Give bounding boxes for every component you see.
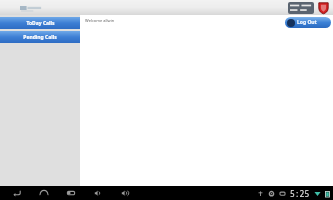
button[interactable]: Log Out — [285, 17, 331, 28]
staticText: Welcome allwin — [85, 18, 115, 23]
button[interactable]: Recent apps — [66, 188, 76, 198]
button[interactable]: Security shield — [317, 1, 330, 14]
button[interactable]: Account info — [288, 2, 314, 14]
staticText: 5:25 — [290, 188, 310, 199]
staticText: Pending Calls — [23, 34, 57, 41]
button[interactable]: Volume down — [93, 188, 103, 198]
button[interactable]: Home — [39, 188, 49, 198]
staticText: Log Out — [297, 19, 317, 26]
staticText: ToDay Calls — [26, 20, 55, 27]
button[interactable]: Pending Calls — [0, 31, 80, 43]
button[interactable]: ToDay Calls — [0, 17, 80, 29]
button[interactable]: Back — [12, 188, 22, 198]
button[interactable]: Volume up — [120, 188, 130, 198]
